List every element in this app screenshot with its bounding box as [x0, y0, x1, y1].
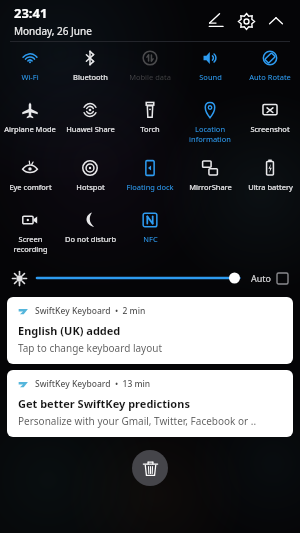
staticText: Personalize with your Gmail, Twitter, Fa… — [18, 414, 257, 428]
button[interactable]: SwiftKey Keyboard • 13 min — [7, 370, 293, 437]
staticText: Auto — [251, 272, 272, 284]
button[interactable]: Location information — [180, 94, 240, 152]
staticText: Get better SwiftKey predictions — [18, 396, 190, 411]
button[interactable]: Floating dock — [120, 152, 180, 204]
button[interactable]: Airplane Mode — [0, 94, 60, 152]
staticText: Eye comfort — [9, 182, 52, 192]
button[interactable]: Auto Rotate — [240, 42, 300, 94]
staticText: Screenshot — [250, 124, 290, 134]
button[interactable]: Hotspot — [60, 152, 120, 204]
button[interactable]: Bluetooth — [60, 42, 120, 94]
button[interactable]: MirrorShare — [180, 152, 240, 204]
staticText: SwiftKey Keyboard • 2 min — [35, 305, 146, 317]
staticText: NFC — [143, 234, 158, 244]
button[interactable]: Screenshot — [240, 94, 300, 152]
button[interactable]: NFC — [120, 204, 180, 262]
staticText: Location information — [189, 124, 231, 144]
button[interactable]: Huawei Share — [60, 94, 120, 152]
button[interactable]: SwiftKey Keyboard • 2 min — [7, 297, 293, 364]
staticText: Ultra battery — [248, 182, 293, 192]
staticText: Huawei Share — [66, 124, 115, 134]
button[interactable]: Mobile data — [120, 42, 180, 94]
button[interactable]: Clear all notifications — [132, 450, 168, 486]
staticText: Mobile data — [129, 72, 171, 82]
staticText: Tap to change keyboard layout — [18, 341, 163, 355]
staticText: Wi-Fi — [21, 72, 39, 82]
staticText: Sound — [199, 72, 222, 82]
staticText: Airplane Mode — [4, 124, 56, 134]
staticText: MirrorShare — [189, 182, 232, 192]
staticText: Floating dock — [126, 182, 174, 192]
button[interactable]: Torch — [120, 94, 180, 152]
staticText: 23:41 — [14, 4, 48, 22]
button[interactable]: Brightness — [36, 268, 241, 288]
button[interactable]: Eye comfort — [0, 152, 60, 204]
staticText: English (UK) added — [18, 323, 121, 338]
staticText: Monday, 26 June — [14, 24, 92, 38]
button[interactable]: Collapse — [261, 6, 291, 36]
staticText: SwiftKey Keyboard • 13 min — [35, 378, 151, 390]
staticText: Bluetooth — [73, 72, 108, 82]
staticText: Auto Rotate — [249, 72, 291, 82]
button[interactable]: Wi-Fi — [0, 42, 60, 94]
staticText: Screen recording — [13, 234, 48, 254]
button[interactable]: Screen recording — [0, 204, 60, 262]
staticText: Torch — [140, 124, 160, 134]
button[interactable]: Edit — [201, 6, 231, 36]
staticText: Hotspot — [76, 182, 105, 192]
button[interactable]: Ultra battery — [240, 152, 300, 204]
button[interactable]: Sound — [180, 42, 240, 94]
staticText: Do not disturb — [65, 234, 116, 244]
button[interactable]: Do not disturb — [60, 204, 120, 262]
button[interactable]: Auto — [251, 272, 288, 284]
button[interactable]: Settings — [231, 6, 261, 36]
